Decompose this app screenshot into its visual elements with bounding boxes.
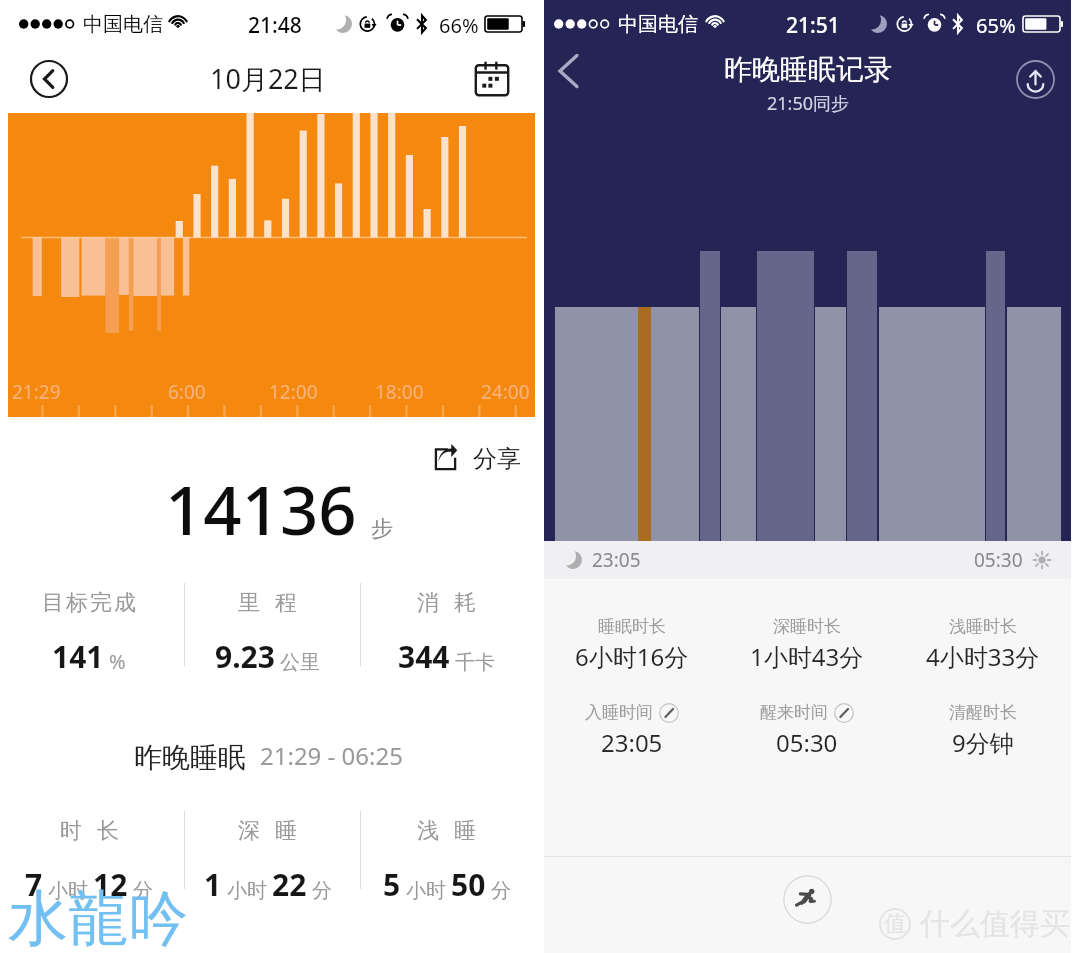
staticText: 程: [275, 589, 297, 617]
staticText: 标: [66, 589, 88, 617]
staticText: 5: [383, 864, 401, 905]
staticText: 141: [52, 636, 104, 677]
staticText: 12:00: [269, 379, 318, 405]
staticText: 值: [884, 910, 906, 938]
staticText: 65%: [976, 12, 1016, 39]
staticText: 14136: [165, 463, 357, 554]
button[interactable]: Back: [27, 57, 71, 101]
staticText: 目: [42, 589, 64, 617]
staticText: 50: [451, 864, 486, 905]
staticText: 18:00: [375, 379, 424, 405]
staticText: 分: [133, 878, 153, 903]
staticText: 步: [371, 515, 393, 543]
staticText: 66%: [439, 12, 479, 39]
staticText: 深睡时长: [773, 616, 841, 637]
staticText: 9分钟: [952, 726, 1014, 759]
staticText: %: [109, 648, 126, 675]
staticText: 344: [398, 636, 450, 677]
staticText: 水龍吟: [8, 881, 188, 953]
staticText: 醒来时间: [760, 702, 828, 723]
staticText: 公里: [280, 650, 320, 675]
staticText: 入睡时间: [585, 702, 653, 723]
staticText: 21:29: [12, 379, 61, 405]
staticText: 清醒时长: [949, 702, 1017, 723]
staticText: 睡: [454, 817, 476, 845]
staticText: 昨晚睡眠记录: [724, 52, 892, 87]
staticText: 23:05: [601, 726, 663, 759]
staticText: 05:30: [776, 726, 838, 759]
staticText: 里: [238, 589, 260, 617]
staticText: 21:29 - 06:25: [260, 739, 403, 772]
staticText: 1: [204, 864, 222, 905]
staticText: 什么值得买: [920, 905, 1070, 943]
staticText: 成: [114, 589, 136, 617]
staticText: 24:00: [481, 379, 530, 405]
staticText: 10月22日: [210, 60, 326, 97]
staticText: 6小时16分: [575, 640, 689, 673]
staticText: 23:05: [592, 547, 641, 573]
staticText: 长: [97, 817, 119, 845]
staticText: 中国电信: [83, 12, 163, 37]
staticText: 7: [25, 864, 43, 905]
staticText: 9.23: [215, 636, 275, 677]
staticText: 1小时43分: [750, 640, 864, 673]
staticText: 睡眠时长: [598, 616, 666, 637]
staticText: 分: [491, 878, 511, 903]
staticText: 21:48: [248, 11, 302, 40]
staticText: 22: [272, 864, 307, 905]
staticText: 深: [238, 817, 260, 845]
staticText: 12: [93, 864, 128, 905]
staticText: 小时: [227, 878, 267, 903]
staticText: 分: [312, 878, 332, 903]
staticText: 耗: [454, 589, 476, 617]
staticText: 中国电信: [618, 12, 698, 37]
staticText: 昨晚睡眠: [134, 740, 246, 775]
staticText: 时: [60, 817, 82, 845]
staticText: 浅: [417, 817, 439, 845]
staticText: 完: [90, 589, 112, 617]
staticText: 4小时33分: [926, 640, 1040, 673]
button[interactable]: Calendar: [468, 55, 516, 103]
staticText: 千卡: [455, 650, 495, 675]
staticText: 浅睡时长: [949, 616, 1017, 637]
staticText: 05:30: [974, 547, 1023, 573]
button[interactable]: Sync: [1013, 57, 1057, 101]
staticText: 小时: [406, 878, 446, 903]
button[interactable]: 分享: [430, 440, 525, 478]
staticText: 6:00: [168, 379, 206, 405]
button[interactable]: Back: [546, 48, 592, 94]
staticText: 消: [417, 589, 439, 617]
staticText: 睡: [275, 817, 297, 845]
staticText: 21:50同步: [767, 91, 850, 116]
staticText: 21:51: [786, 11, 840, 40]
staticText: 分享: [473, 444, 521, 474]
button[interactable]: Activity: [783, 875, 832, 924]
staticText: 小时: [48, 878, 88, 903]
